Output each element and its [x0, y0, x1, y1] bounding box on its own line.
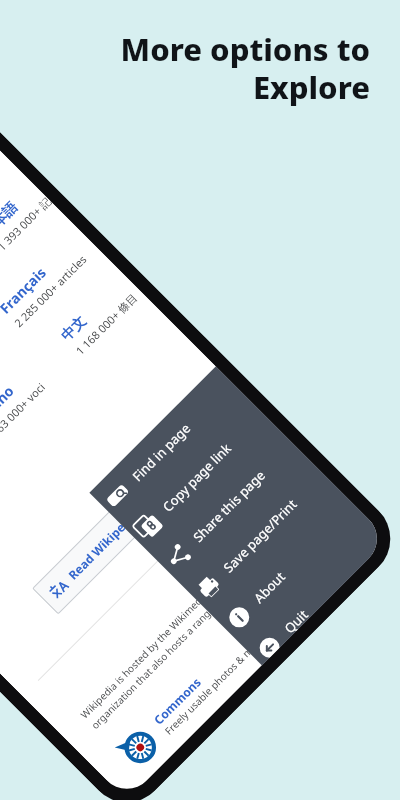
staticText: Wikipedia is hosted by the Wikimedia Fou…	[77, 485, 324, 732]
staticText: 2 285 000+ articles	[11, 251, 90, 330]
staticText: Quit	[280, 605, 311, 636]
button[interactable]: 日本語	[0, 179, 54, 254]
staticText: Read Wikipedia in your language	[65, 432, 215, 583]
button[interactable]: Save page/Print	[181, 457, 338, 614]
staticText: About	[250, 568, 289, 607]
staticText: logos	[45, 551, 76, 582]
button[interactable]: Copy page link	[120, 397, 277, 554]
button[interactable]: Share this page	[150, 427, 307, 584]
staticText: Français	[0, 263, 50, 317]
staticText: 中文	[57, 313, 90, 345]
staticText: 1 393 000+ 記事	[0, 194, 54, 254]
button[interactable]: About	[211, 488, 368, 645]
staticText: 1 663 000+ voci	[0, 379, 48, 446]
button[interactable]: 中文	[57, 275, 140, 358]
button[interactable]: Read Wikipedia in your language	[32, 412, 235, 614]
button[interactable]: Find in page	[89, 366, 246, 523]
staticText: Save page/Print	[219, 495, 301, 576]
button[interactable]: Italiano	[0, 363, 48, 446]
staticText: Freely usable photos & more	[161, 632, 267, 738]
button[interactable]: Commons	[113, 618, 270, 774]
staticText: Find in page	[128, 419, 194, 485]
button[interactable]: Français	[0, 235, 90, 330]
staticText: Italiano	[0, 381, 18, 433]
button[interactable]: Quit	[241, 518, 388, 665]
staticText: More options to Explore	[60, 28, 370, 108]
staticText: Share this page	[189, 466, 269, 546]
staticText: Copy page link	[159, 439, 235, 515]
staticText: Commons	[150, 674, 204, 728]
staticText: 日本語	[0, 199, 21, 241]
staticText: 1 168 000+ 條目	[72, 290, 140, 358]
